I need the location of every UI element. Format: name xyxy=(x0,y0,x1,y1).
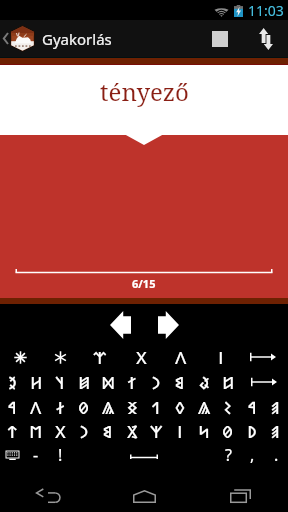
staticText: 𐳙 xyxy=(152,372,161,393)
button[interactable]: ! xyxy=(48,443,72,467)
button[interactable]: Space xyxy=(84,443,204,467)
button[interactable]: 𐳆 xyxy=(216,370,240,394)
button[interactable]: 𐳙 xyxy=(144,370,168,394)
button[interactable]: 𐳢 xyxy=(24,370,48,394)
button[interactable]: 𐳰 xyxy=(144,419,168,443)
staticText: 𐳠 xyxy=(271,397,281,418)
button[interactable]: Home xyxy=(96,480,192,512)
button[interactable]: 𐳮 xyxy=(24,419,48,443)
staticText: 𐳂 xyxy=(55,421,66,442)
button[interactable]: 𐳠 xyxy=(264,419,288,443)
button[interactable] xyxy=(40,345,80,369)
button[interactable]: 𐳂 xyxy=(121,345,161,369)
staticText: 𐳦 xyxy=(55,372,65,393)
button[interactable]: 𐳤 xyxy=(161,345,201,369)
staticText: 𐳒 xyxy=(152,397,161,418)
button[interactable]: ? xyxy=(216,443,240,467)
staticText: 𐳓 xyxy=(175,397,185,418)
button[interactable]: Enter xyxy=(240,370,288,394)
staticText: 𐳤 xyxy=(175,347,187,368)
button[interactable]: 𐳘 xyxy=(168,370,192,394)
button[interactable]: 𐳦 xyxy=(48,370,72,394)
button[interactable]: . xyxy=(264,443,288,467)
button[interactable] xyxy=(0,345,40,369)
button[interactable]: Stop xyxy=(197,20,243,57)
button[interactable]: - xyxy=(24,443,48,467)
button[interactable]: 𐳯 xyxy=(72,370,96,394)
button[interactable]: 𐳘 xyxy=(96,419,120,443)
button[interactable]: 𐳤 xyxy=(24,395,48,419)
button[interactable]: 𐳚 xyxy=(240,419,264,443)
button[interactable]: 𐳂 xyxy=(48,419,72,443)
staticText: 𐳏 xyxy=(127,397,138,418)
staticText: 𐳭 xyxy=(198,421,210,442)
button[interactable]: 𐳀 xyxy=(0,395,24,419)
staticText: 𐳫 xyxy=(101,372,116,393)
button[interactable]: 𐳥 xyxy=(201,345,241,369)
staticText: 𐳘 xyxy=(175,372,185,393)
button[interactable]: 𐳉 xyxy=(0,370,24,394)
staticText: 𐳀 xyxy=(8,397,17,418)
staticText: 𐳂 xyxy=(136,347,147,368)
button[interactable]: 𐳥 xyxy=(168,419,192,443)
staticText: 𐳄 xyxy=(8,421,17,442)
staticText: - xyxy=(33,444,39,466)
staticText: ? xyxy=(225,444,232,466)
button[interactable]: 𐳐 xyxy=(120,370,144,394)
button[interactable]: 𐳖 xyxy=(192,395,216,419)
staticText: 𐳇 xyxy=(56,397,65,418)
staticText: tényező xyxy=(100,75,189,108)
button[interactable]: 𐳭 xyxy=(192,419,216,443)
button[interactable]: 𐳩 xyxy=(120,419,144,443)
button[interactable]: Swap direction xyxy=(243,20,288,57)
button[interactable]: 𐳓 xyxy=(168,395,192,419)
button[interactable]: Recent apps xyxy=(192,480,288,512)
staticText: 𐳮 xyxy=(29,421,43,442)
button[interactable]: 𐳇 xyxy=(48,395,72,419)
staticText: 𐳟 xyxy=(199,372,210,393)
staticText: 𐳖 xyxy=(102,397,115,418)
staticText: 𐳗 xyxy=(78,397,90,418)
staticText: 𐳘 xyxy=(103,421,113,442)
staticText: 11:03 xyxy=(248,1,284,20)
staticText: 𐳚 xyxy=(247,421,257,442)
button[interactable]: 𐳫 xyxy=(96,370,120,394)
button[interactable]: 𐳧 xyxy=(80,345,120,369)
button[interactable]: 𐳝 xyxy=(216,395,240,419)
staticText: 𐳧 xyxy=(93,347,107,368)
staticText: 𐳩 xyxy=(127,421,138,442)
staticText: 𐳀 xyxy=(248,397,257,418)
button[interactable]: Previous xyxy=(100,308,140,342)
staticText: 𐳝 xyxy=(224,397,232,418)
staticText: 𐳥 xyxy=(177,421,183,442)
button[interactable]: Next xyxy=(148,308,188,342)
button[interactable]: , xyxy=(240,443,264,467)
staticText: 𐳐 xyxy=(127,372,137,393)
button[interactable]: 𐳏 xyxy=(120,395,144,419)
staticText: 𐳉 xyxy=(8,372,17,393)
button[interactable]: 𐳄 xyxy=(0,419,24,443)
button[interactable]: Back xyxy=(0,480,96,512)
staticText: 𐳆 xyxy=(222,372,235,393)
button[interactable]: 𐳀 xyxy=(240,395,264,419)
button[interactable]: 𐳟 xyxy=(192,370,216,394)
staticText: . xyxy=(274,444,279,466)
button[interactable]: 𐳠 xyxy=(264,395,288,419)
staticText: 𐳗 xyxy=(222,421,234,442)
staticText: 𐳖 xyxy=(198,397,211,418)
button[interactable]: Switch keyboard xyxy=(0,443,24,467)
staticText: 𐳥 xyxy=(218,347,224,368)
button[interactable]: 𐳗 xyxy=(216,419,240,443)
button[interactable]: 𐳖 xyxy=(96,395,120,419)
staticText: 𐳙 xyxy=(80,421,89,442)
staticText: 6/15 xyxy=(132,276,156,291)
button[interactable]: 𐳗 xyxy=(72,395,96,419)
button[interactable]: 𐳙 xyxy=(72,419,96,443)
staticText: ! xyxy=(58,444,63,466)
staticText: 𐳤 xyxy=(30,397,42,418)
button[interactable]: 𐳒 xyxy=(144,395,168,419)
button[interactable]: Tab xyxy=(241,345,285,369)
staticText: 𐳰 xyxy=(150,421,163,442)
staticText: 𐳠 xyxy=(271,421,281,442)
button[interactable]: Up xyxy=(0,25,38,52)
